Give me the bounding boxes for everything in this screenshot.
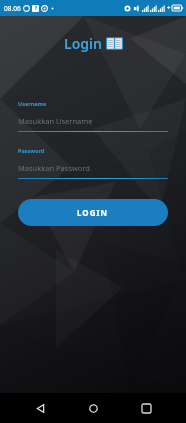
staticText: Password: [18, 147, 45, 154]
staticText: LOGIN: [77, 207, 109, 218]
staticText: Username: [18, 100, 47, 107]
button[interactable]: Back: [27, 395, 53, 421]
staticText: Login: [64, 34, 102, 53]
button[interactable]: LOGIN: [18, 199, 168, 226]
staticText: Masukkan Password: [18, 163, 90, 173]
button[interactable]: Recent apps: [133, 395, 159, 421]
staticText: Masukkan Username: [18, 116, 93, 126]
button[interactable]: Home: [80, 395, 106, 421]
staticText: +: [167, 4, 171, 12]
button[interactable]: Masukkan Password: [18, 161, 168, 179]
staticText: f: [35, 5, 37, 12]
staticText: 08.06: [4, 4, 21, 13]
button[interactable]: Masukkan Username: [18, 114, 168, 132]
